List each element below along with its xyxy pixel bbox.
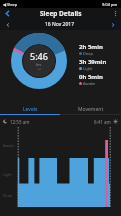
staticText: 6:41 am [94,119,111,125]
button[interactable]: Next day [105,19,121,30]
staticText: Levels [23,106,38,113]
staticText: 2h 5min [79,43,103,51]
staticText: hrs [36,62,42,67]
other: Bedtime [3,119,8,124]
staticText: Deep [3,193,12,198]
staticText: 12:55 am [10,119,30,125]
staticText: 5:46 [30,50,48,62]
staticText: ◀ Sleep [3,2,18,7]
staticText: Movement [78,106,104,113]
staticText: Light [3,172,12,177]
button[interactable]: Levels [0,103,60,116]
staticText: Sleep Details [40,9,82,18]
button[interactable]: Movement [60,103,121,116]
staticText: Deep [83,51,93,56]
button[interactable]: Previous day [0,19,16,30]
staticText: 0h 5min [79,73,103,81]
staticText: 9:04 pm [102,2,118,7]
staticText: 3h 39min [79,58,107,66]
button[interactable]: Back [0,8,14,19]
staticText: Awake [83,81,96,86]
staticText: Awake [3,143,15,148]
button[interactable]: More options [109,8,121,19]
staticText: 16 Nov 2017 [45,21,75,28]
other: Wake up [113,119,118,124]
staticText: Light [83,66,93,71]
